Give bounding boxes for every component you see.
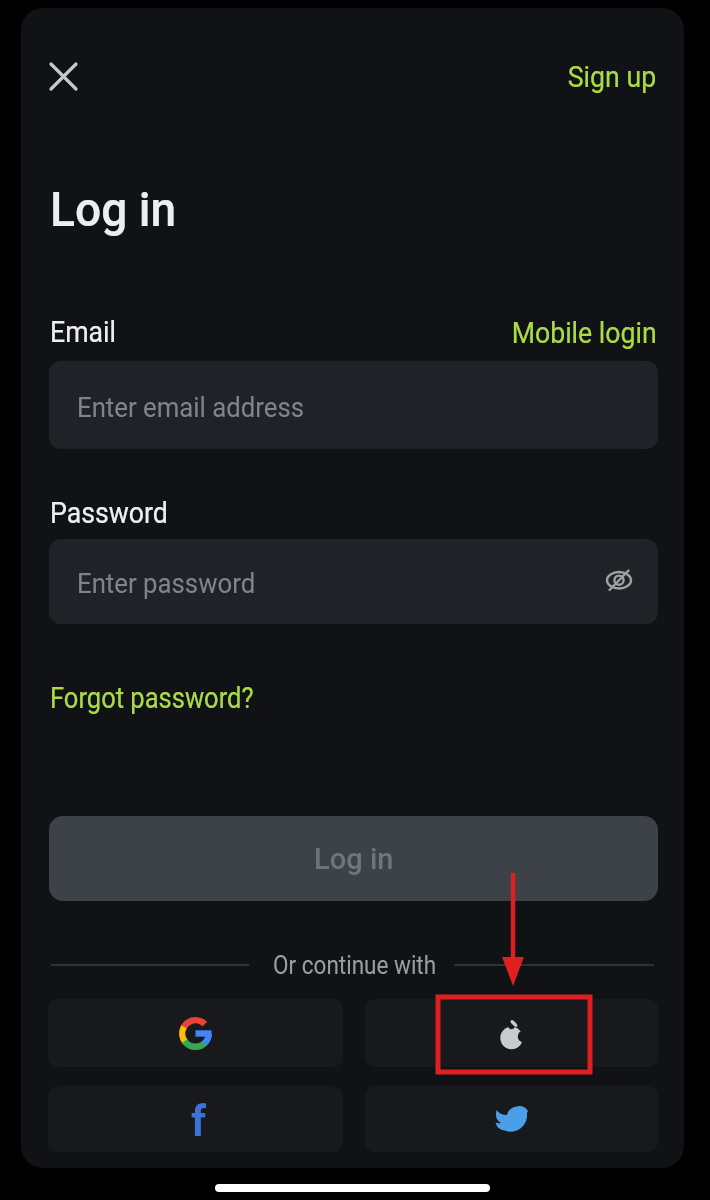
button[interactable]	[365, 999, 658, 1067]
button[interactable]	[48, 999, 343, 1067]
button[interactable]: f	[48, 1086, 343, 1152]
staticText: Or continue with	[273, 951, 437, 980]
button[interactable]: Sign up	[450, 59, 657, 95]
button[interactable]: Mobile login	[400, 313, 657, 353]
button[interactable]	[365, 1086, 658, 1152]
button[interactable]: Forgot password?	[50, 681, 282, 715]
button[interactable]: Enter email address	[49, 361, 658, 449]
button[interactable]	[50, 63, 77, 90]
staticText: Enter password	[77, 567, 255, 600]
staticText: Log in	[314, 842, 394, 876]
staticText: Password	[50, 496, 169, 530]
staticText: f	[191, 1097, 207, 1146]
staticText: Forgot password?	[50, 681, 254, 715]
button[interactable]: Log in	[49, 816, 658, 901]
staticText: Enter email address	[77, 391, 304, 424]
button[interactable]: Enter password	[49, 539, 658, 624]
staticText: Sign up	[568, 60, 657, 94]
staticText: Log in	[50, 181, 177, 238]
staticText: Mobile login	[512, 316, 657, 350]
staticText: Email	[50, 315, 116, 349]
button[interactable]	[606, 567, 632, 593]
